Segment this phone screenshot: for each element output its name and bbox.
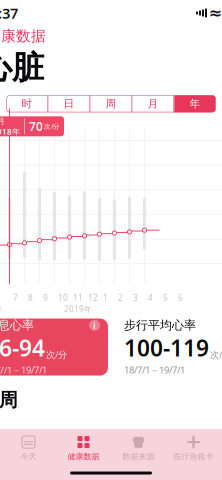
button[interactable]: ‹ <box>0 18 54 54</box>
staticText: 日 <box>63 97 74 110</box>
staticText: 周 <box>105 97 116 110</box>
staticText: 10 <box>58 292 68 303</box>
staticText: 11 <box>73 292 83 303</box>
staticText: 2018年 <box>0 304 2 314</box>
staticText: 月 <box>147 97 158 110</box>
button[interactable]: 数据来源 <box>111 430 166 466</box>
button[interactable]: 周 <box>90 95 131 112</box>
button[interactable]: 时 <box>6 95 47 112</box>
staticText: 4 <box>148 292 153 303</box>
button[interactable]: 健康数据 <box>56 430 111 466</box>
staticText: 5 <box>163 292 168 303</box>
staticText: 2019年 <box>64 304 92 314</box>
staticText: 数据来源 <box>122 452 154 461</box>
staticText: 66-94 <box>0 333 45 363</box>
button[interactable]: 月 <box>132 95 173 112</box>
staticText: 2018年 <box>0 126 20 137</box>
staticText: 健康数据 <box>67 452 99 461</box>
staticText: 2 <box>118 292 123 303</box>
staticText: 12 <box>88 292 98 303</box>
staticText: 静息心率 <box>0 318 34 333</box>
button[interactable]: 今天 <box>1 430 56 466</box>
staticText: 时 <box>21 97 32 110</box>
staticText: 今天 <box>20 452 36 461</box>
staticText: 本周 <box>0 389 18 411</box>
staticText: 6 <box>178 292 183 303</box>
staticText: 18/7/1－19/7/1 <box>0 364 47 376</box>
staticText: 次/ <box>210 348 222 361</box>
button[interactable]: 静息心率 <box>0 319 108 376</box>
staticText: 健康数据 <box>0 27 46 45</box>
staticText: 步行平均心率 <box>124 318 196 333</box>
staticText: 医疗急救卡 <box>173 452 213 461</box>
staticText: 心脏 <box>0 48 44 87</box>
staticText: ≈ <box>208 4 221 22</box>
staticText: 9 <box>43 292 48 303</box>
staticText: 7 <box>13 292 18 303</box>
staticText: 70 <box>29 118 43 134</box>
staticText: 次/分 <box>44 122 60 131</box>
staticText: 1 <box>103 292 108 303</box>
staticText: 100-119 <box>124 333 209 363</box>
staticText: 18/7/1－19/7/1 <box>124 364 185 376</box>
staticText: 8 <box>28 292 33 303</box>
staticText: i <box>93 319 96 331</box>
button[interactable]: 年 <box>174 95 215 112</box>
staticText: 06:37 <box>0 3 18 23</box>
button[interactable]: 步行平均心率 <box>116 319 222 376</box>
staticText: 次/分 <box>46 348 67 361</box>
button[interactable]: 日 <box>48 95 89 112</box>
staticText: 3 <box>133 292 138 303</box>
staticText: 9月 <box>0 116 5 126</box>
staticText: 年 <box>189 97 200 110</box>
button[interactable]: 医疗急救卡 <box>166 430 221 466</box>
